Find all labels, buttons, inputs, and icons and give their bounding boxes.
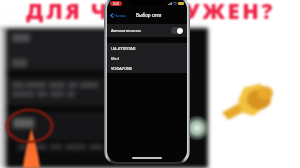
staticText: Назад [114,13,126,18]
staticText: UA-KYIVSTAR [111,46,136,51]
staticText: Автоматически [111,28,141,33]
button[interactable]: UA-KYIVSTAR [107,43,187,53]
other: Указатель [221,83,273,123]
button[interactable]: Автоматически [107,24,187,37]
staticText: 9:41 [113,2,120,6]
button[interactable]: life:) [107,53,187,63]
staticText: VODAFONE [111,66,133,71]
button[interactable]: VODAFONE [107,63,187,73]
staticText: life:) [111,56,119,61]
staticText: ДЛЯ ЧЕГО НУЖЕН? [26,0,275,24]
button[interactable]: Назад [110,13,126,18]
staticText: Выбор сети [136,12,162,18]
